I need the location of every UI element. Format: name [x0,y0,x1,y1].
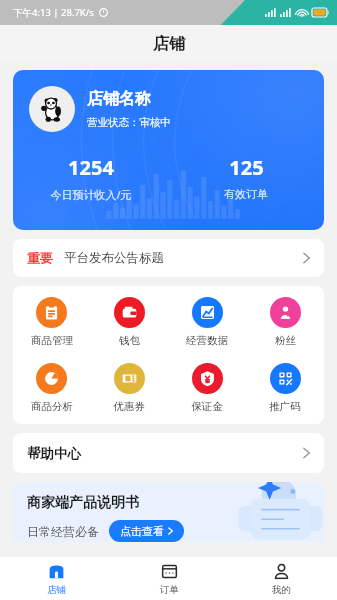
staticText: 商家端产品说明书 [27,494,139,512]
button[interactable]: 经营数据 [168,297,246,347]
staticText: 店铺 [47,584,66,596]
button[interactable]: 商家端产品说明书 [13,482,324,542]
staticText: 经营数据 [186,334,228,347]
button[interactable]: 推广码 [246,363,324,413]
staticText: 订单 [160,584,179,596]
staticText: 点击查看 [120,524,164,538]
staticText: 今日预计收入/元 [50,187,132,202]
staticText: 钱包 [119,334,140,347]
staticText: 推广码 [269,400,301,413]
button[interactable]: 店铺 [0,557,113,600]
staticText: 保证金 [191,400,223,413]
staticText: 我的 [272,584,291,596]
staticText: 下午4:13 | 28.7K/s [13,6,94,19]
button[interactable]: 店铺名称 [13,70,324,230]
button[interactable]: 粉丝 [246,297,324,347]
button[interactable]: 保证金 [168,363,246,413]
staticText: 日常经营必备 [27,524,99,539]
staticText: 优惠券 [113,400,145,413]
button[interactable]: 商品分析 [13,363,90,413]
button[interactable]: 帮助中心 [13,433,324,473]
staticText: 营业状态：审核中 [87,116,171,129]
button[interactable]: 我的 [225,557,337,600]
button[interactable]: 商品管理 [13,297,90,347]
staticText: 平台发布公告标题 [64,250,164,266]
staticText: 店铺名称 [87,89,151,109]
staticText: 商品分析 [31,400,73,413]
button[interactable]: 优惠券 [90,363,168,413]
staticText: 商品管理 [31,334,73,347]
staticText: 帮助中心 [27,445,81,462]
button[interactable]: 重要 [13,239,324,277]
staticText: 店铺 [153,34,185,54]
button[interactable]: 点击查看 [109,520,184,542]
staticText: 重要 [27,250,53,266]
staticText: 粉丝 [275,334,296,347]
button[interactable]: 订单 [113,557,225,600]
staticText: 1254 [68,154,114,181]
button[interactable]: 钱包 [90,297,168,347]
staticText: 125 [229,154,264,181]
staticText: 有效订单 [224,187,268,201]
